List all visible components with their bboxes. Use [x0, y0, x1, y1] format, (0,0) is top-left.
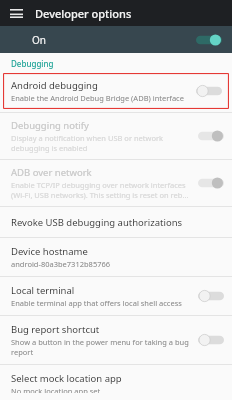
staticText: Developer options [35, 6, 132, 21]
button[interactable]: Debugging notify [0, 113, 232, 159]
staticText: Show a button in the power menu for taki… [11, 337, 192, 357]
button[interactable]: Select mock location app [0, 365, 232, 400]
staticText: Display a notification when USB or netwo… [11, 133, 192, 153]
button[interactable]: Revoke USB debugging authorizations [0, 207, 232, 237]
staticText: Enable terminal app that offers local sh… [11, 298, 182, 308]
staticText: No mock location app set [11, 386, 101, 393]
button[interactable]: Device hostname [0, 238, 232, 276]
button[interactable]: Local terminal [0, 277, 232, 315]
staticText: Revoke USB debugging authorizations [11, 216, 183, 229]
staticText: Enable TCP/IP debugging over network int… [11, 180, 192, 200]
staticText: Enable the Android Debug Bridge (ADB) in… [11, 93, 184, 103]
button[interactable]: ADB over network [0, 160, 232, 206]
staticText: Bug report shortcut [11, 323, 100, 336]
staticText: Select mock location app [11, 372, 122, 385]
staticText: Local terminal [11, 284, 75, 297]
button[interactable]: Open navigation menu [5, 2, 27, 24]
button[interactable]: On [0, 26, 232, 53]
staticText: ADB over network [11, 166, 92, 179]
staticText: Debugging notify [11, 119, 89, 132]
button[interactable]: Bug report shortcut [0, 316, 232, 364]
button[interactable]: Android debugging [3, 73, 229, 109]
staticText: Device hostname [11, 245, 88, 258]
staticText: On [32, 33, 196, 47]
staticText: Debugging [11, 58, 54, 69]
staticText: android-80a3be7312b85766 [11, 259, 111, 269]
staticText: Android debugging [11, 79, 98, 92]
